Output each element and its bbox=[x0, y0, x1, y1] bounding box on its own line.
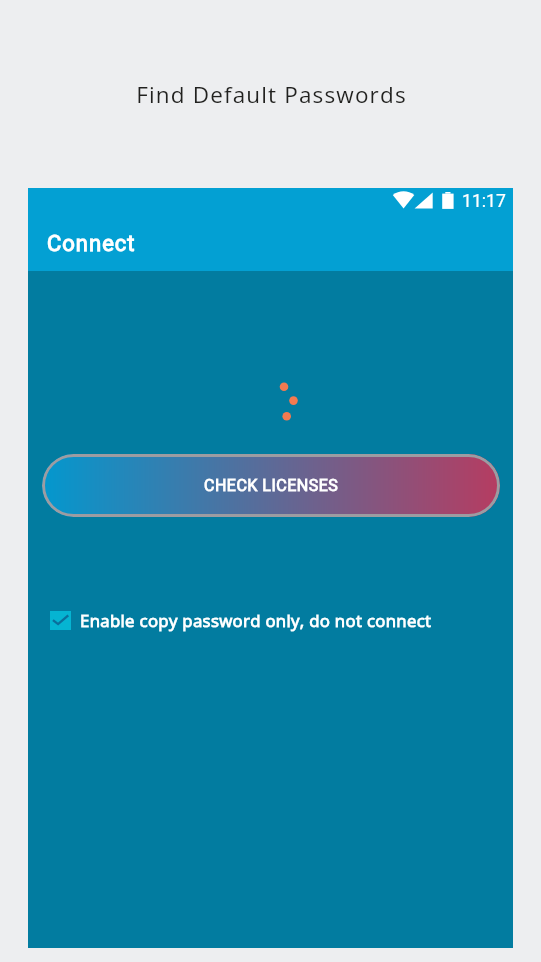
staticText: Enable copy password only, do not connec… bbox=[80, 609, 432, 632]
staticText: 11:17 bbox=[462, 191, 506, 212]
button[interactable]: Enable copy password only, do not connec… bbox=[28, 604, 513, 636]
staticText: CHECK LICENSES bbox=[204, 476, 339, 495]
button[interactable]: CHECK LICENSES bbox=[42, 454, 500, 517]
staticText: Connect bbox=[47, 231, 136, 257]
staticText: Find Default Passwords bbox=[1, 79, 541, 110]
other: Status icons bbox=[388, 188, 488, 218]
